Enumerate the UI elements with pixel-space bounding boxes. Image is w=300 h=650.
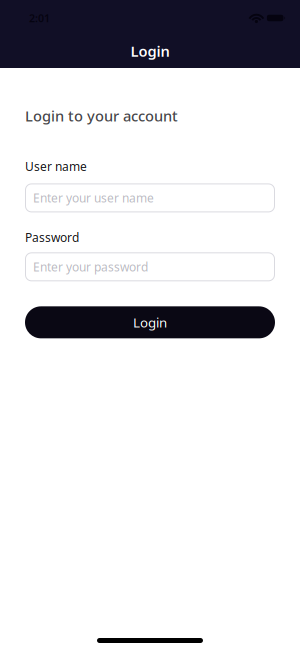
staticText: 2:01: [29, 11, 50, 25]
staticText: User name: [25, 158, 87, 174]
button[interactable]: Enter your user name: [25, 183, 275, 212]
staticText: Login: [130, 41, 169, 61]
staticText: Enter your password: [33, 259, 148, 275]
button[interactable]: Login: [25, 306, 275, 338]
staticText: Login to your account: [25, 106, 178, 125]
button[interactable]: Enter your password: [25, 252, 275, 281]
staticText: Password: [25, 229, 79, 245]
staticText: Login: [133, 313, 167, 331]
staticText: Enter your user name: [33, 190, 154, 206]
